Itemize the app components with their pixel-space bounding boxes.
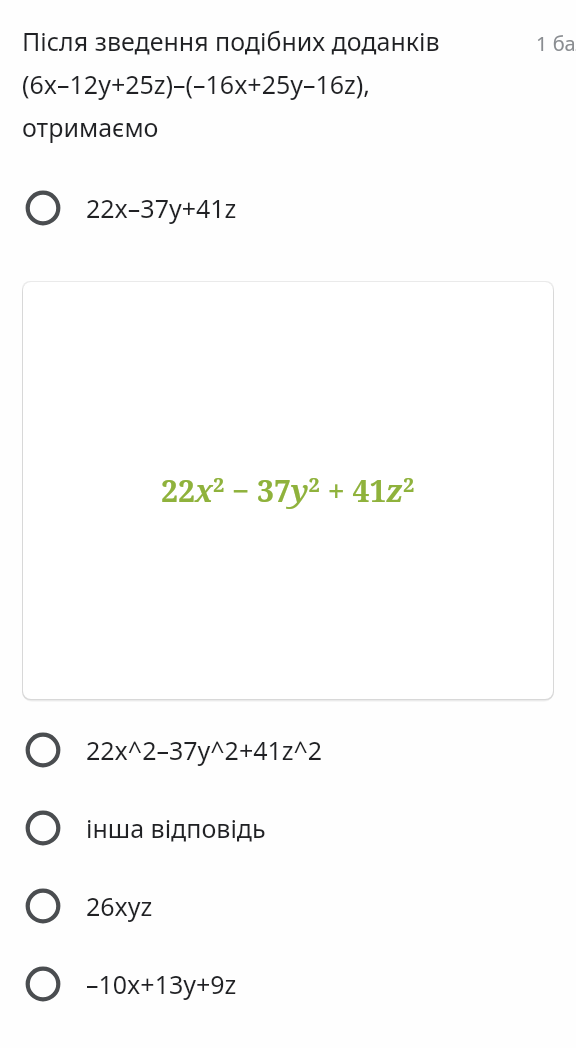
button[interactable]: –10x+13y+9z: [0, 956, 576, 1012]
button[interactable]: 22x–37y+41z: [0, 180, 576, 236]
staticText: 22x2 − 37y2 + 41z2: [161, 470, 415, 511]
staticText: –10x+13y+9z: [86, 967, 237, 1001]
staticText: 22x–37y+41z: [86, 191, 237, 225]
button[interactable]: 22x^2–37y^2+41z^2: [0, 722, 576, 778]
button[interactable]: 26xyz: [0, 878, 576, 934]
staticText: інша відповідь: [86, 811, 266, 845]
staticText: 22x^2–37y^2+41z^2: [86, 733, 323, 767]
staticText: Після зведення подібних доданків (6x–12y…: [22, 24, 480, 144]
staticText: 1 бал: [536, 30, 576, 57]
button[interactable]: 22x2 − 37y2 + 41z2: [23, 282, 553, 699]
button[interactable]: інша відповідь: [0, 800, 576, 856]
staticText: 26xyz: [86, 889, 153, 923]
